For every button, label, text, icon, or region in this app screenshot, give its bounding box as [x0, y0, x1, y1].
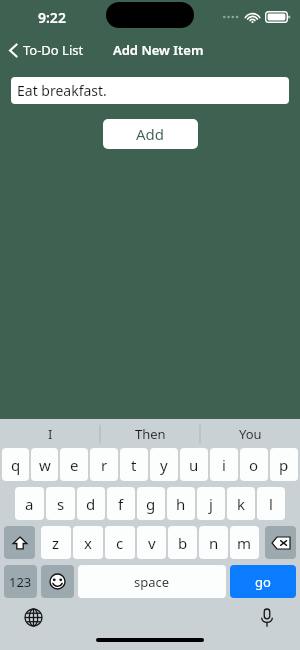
button[interactable]: k — [227, 487, 255, 520]
staticText: h — [176, 494, 186, 514]
staticText: m — [237, 533, 252, 553]
button[interactable]: o — [240, 448, 268, 481]
staticText: k — [237, 494, 246, 514]
staticText: d — [86, 494, 96, 514]
staticText: o — [249, 455, 259, 475]
button[interactable]: v — [137, 526, 166, 559]
button[interactable]: q — [2, 448, 29, 481]
button[interactable]: You — [200, 419, 300, 448]
button[interactable]: e — [60, 448, 88, 481]
button[interactable]: c — [105, 526, 135, 559]
button[interactable]: d — [77, 487, 105, 520]
staticText: e — [70, 455, 79, 475]
button[interactable]: h — [167, 487, 195, 520]
staticText: u — [189, 455, 199, 475]
staticText: f — [118, 494, 124, 514]
button[interactable]: Backspace — [265, 526, 296, 559]
staticText: z — [52, 533, 60, 553]
button[interactable]: g — [137, 487, 165, 520]
button[interactable]: t — [120, 448, 148, 481]
staticText: You — [239, 425, 262, 443]
button[interactable]: u — [180, 448, 208, 481]
button[interactable]: Shift — [4, 526, 35, 559]
button[interactable]: Then — [100, 419, 200, 448]
staticText: I — [48, 425, 53, 443]
button[interactable]: 123 — [4, 565, 37, 598]
staticText: g — [146, 494, 156, 514]
staticText: Add — [136, 124, 165, 144]
staticText: a — [25, 494, 34, 514]
staticText: p — [279, 455, 289, 475]
staticText: To-Do List — [23, 41, 84, 59]
staticText: t — [131, 455, 137, 475]
button[interactable]: Dictation — [254, 604, 280, 630]
button[interactable]: w — [31, 448, 58, 481]
staticText: j — [209, 494, 213, 514]
staticText: v — [148, 533, 156, 553]
button[interactable]: go — [230, 565, 296, 598]
staticText: Eat breakfast. — [17, 81, 107, 100]
staticText: c — [116, 533, 124, 553]
button[interactable]: Eat breakfast. — [11, 77, 289, 104]
staticText: w — [39, 455, 51, 475]
staticText: b — [178, 533, 188, 553]
button[interactable]: j — [197, 487, 225, 520]
staticText: i — [222, 455, 226, 475]
staticText: q — [11, 455, 21, 475]
staticText: Add New Item — [113, 41, 204, 59]
button[interactable]: n — [199, 526, 228, 559]
button[interactable]: r — [90, 448, 118, 481]
button[interactable]: space — [78, 565, 226, 598]
staticText: r — [101, 455, 108, 475]
button[interactable]: Emoji — [41, 565, 74, 598]
button[interactable]: I — [0, 419, 100, 448]
staticText: go — [255, 573, 271, 591]
button[interactable]: b — [168, 526, 197, 559]
button[interactable]: m — [230, 526, 259, 559]
button[interactable]: i — [210, 448, 238, 481]
button[interactable]: x — [73, 526, 103, 559]
button[interactable]: Change keyboard — [20, 604, 46, 630]
button[interactable]: z — [41, 526, 71, 559]
staticText: 9:22 — [38, 8, 66, 27]
staticText: Then — [135, 425, 166, 443]
staticText: s — [57, 494, 65, 514]
button[interactable]: To-Do List — [5, 37, 88, 63]
staticText: space — [134, 573, 170, 591]
button[interactable]: Add — [103, 119, 198, 149]
button[interactable]: l — [257, 487, 285, 520]
button[interactable]: s — [46, 487, 75, 520]
button[interactable]: f — [107, 487, 135, 520]
staticText: n — [209, 533, 219, 553]
staticText: y — [160, 455, 168, 475]
button[interactable]: a — [15, 487, 44, 520]
staticText: l — [269, 494, 273, 514]
button[interactable]: p — [270, 448, 298, 481]
staticText: 123 — [9, 573, 32, 591]
staticText: x — [84, 533, 92, 553]
button[interactable]: y — [150, 448, 178, 481]
